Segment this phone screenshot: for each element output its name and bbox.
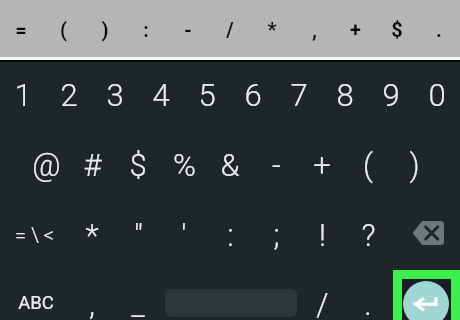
button[interactable]: #	[69, 130, 115, 200]
staticText: #	[83, 147, 102, 183]
button[interactable]: '	[161, 200, 207, 270]
staticText: -	[184, 18, 192, 41]
staticText: :	[143, 18, 149, 41]
staticText: =	[15, 18, 27, 41]
staticText: 8	[336, 77, 354, 113]
button[interactable]: (	[42, 0, 84, 59]
staticText: !	[319, 217, 326, 253]
button[interactable]: +	[334, 0, 376, 59]
button[interactable]: ?	[345, 200, 391, 270]
staticText: )	[409, 147, 420, 183]
staticText: -	[272, 147, 281, 183]
button[interactable]: Enter	[403, 281, 449, 320]
staticText: )	[101, 18, 109, 41]
staticText: 5	[198, 77, 216, 113]
staticText: $	[129, 147, 147, 183]
staticText: *	[267, 18, 277, 41]
button[interactable]: *	[69, 200, 115, 270]
staticText: ,	[89, 286, 95, 320]
button[interactable]: ,	[69, 269, 115, 320]
staticText: 6	[244, 77, 262, 113]
staticText: .	[364, 286, 372, 320]
staticText: %	[173, 147, 196, 183]
button[interactable]: _	[115, 269, 161, 320]
staticText: (	[60, 18, 67, 41]
button[interactable]: -	[167, 0, 209, 59]
button[interactable]: :	[125, 0, 167, 59]
button[interactable]: 8	[322, 60, 368, 130]
staticText: ;	[273, 217, 280, 253]
button[interactable]: )	[84, 0, 126, 59]
button[interactable]: = \ <	[0, 199, 68, 269]
button[interactable]: .	[345, 269, 391, 320]
button[interactable]: ABC	[5, 268, 67, 320]
button[interactable]: )	[391, 130, 437, 200]
button[interactable]: 2	[46, 60, 92, 130]
button[interactable]: 6	[230, 60, 276, 130]
staticText: ABC	[18, 292, 54, 314]
staticText: 3	[106, 77, 124, 113]
button[interactable]: *	[251, 0, 293, 59]
staticText: +	[313, 147, 331, 183]
button[interactable]: /	[299, 269, 345, 320]
staticText: *	[85, 217, 99, 253]
staticText: /	[316, 286, 329, 320]
staticText: 7	[290, 77, 308, 113]
staticText: 1	[14, 77, 32, 113]
staticText: 9	[382, 77, 400, 113]
staticText: 2	[60, 77, 78, 113]
staticText: :	[227, 217, 234, 253]
button[interactable]: 4	[138, 60, 184, 130]
staticText: (	[363, 147, 373, 183]
button[interactable]: /	[209, 0, 251, 59]
staticText: 0	[428, 77, 446, 113]
staticText: '	[181, 217, 187, 253]
button[interactable]: &	[207, 130, 253, 200]
staticText: +	[350, 18, 361, 41]
button[interactable]: Backspace	[401, 198, 455, 268]
staticText: = \ <	[15, 223, 54, 246]
button[interactable]: !	[299, 200, 345, 270]
staticText: $	[391, 18, 403, 41]
staticText: .	[436, 18, 442, 41]
button[interactable]: +	[299, 130, 345, 200]
staticText: 4	[152, 77, 170, 113]
staticText: ?	[361, 217, 376, 253]
button[interactable]: (	[345, 130, 391, 200]
button[interactable]: 1	[0, 60, 46, 130]
button[interactable]: "	[115, 200, 161, 270]
staticText: @	[32, 147, 61, 183]
button[interactable]: -	[253, 130, 299, 200]
button[interactable]: ;	[253, 200, 299, 270]
button[interactable]: @	[23, 130, 69, 200]
button[interactable]: ,	[293, 0, 335, 59]
staticText: &	[220, 147, 240, 183]
button[interactable]: 3	[92, 60, 138, 130]
staticText: /	[226, 18, 234, 41]
button[interactable]: :	[207, 200, 253, 270]
staticText: _	[131, 286, 145, 320]
staticText: "	[134, 217, 143, 253]
staticText: ,	[312, 18, 317, 41]
button[interactable]: 5	[184, 60, 230, 130]
button[interactable]: 7	[276, 60, 322, 130]
button[interactable]: 0	[414, 60, 460, 130]
button[interactable]: $	[115, 130, 161, 200]
button[interactable]: $	[376, 0, 418, 59]
button[interactable]: .	[418, 0, 460, 59]
button[interactable]: =	[0, 0, 42, 59]
button[interactable]: %	[161, 130, 207, 200]
button[interactable]: 9	[368, 60, 414, 130]
